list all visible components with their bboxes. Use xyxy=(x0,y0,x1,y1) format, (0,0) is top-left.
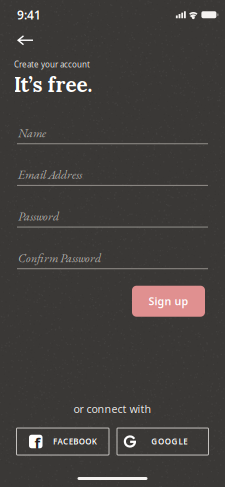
button[interactable]: GOOGLE xyxy=(117,428,208,455)
staticText: Name xyxy=(18,125,46,141)
staticText: Password xyxy=(18,208,59,224)
button[interactable]: Back xyxy=(0,26,33,45)
staticText: or connect with xyxy=(73,402,151,416)
staticText: Create your account xyxy=(14,59,90,70)
staticText: It’s free. xyxy=(13,71,92,98)
staticText: Sign up xyxy=(148,294,188,308)
staticText: Email Address xyxy=(18,167,82,182)
staticText: 9:41 xyxy=(17,7,41,23)
staticText: f xyxy=(34,433,40,453)
staticText: GOOGLE xyxy=(151,436,187,447)
button[interactable]: f xyxy=(16,428,109,455)
staticText: Confirm Password xyxy=(18,250,101,266)
staticText: FACEBOOK xyxy=(53,436,97,447)
button[interactable]: Sign up xyxy=(132,286,205,317)
